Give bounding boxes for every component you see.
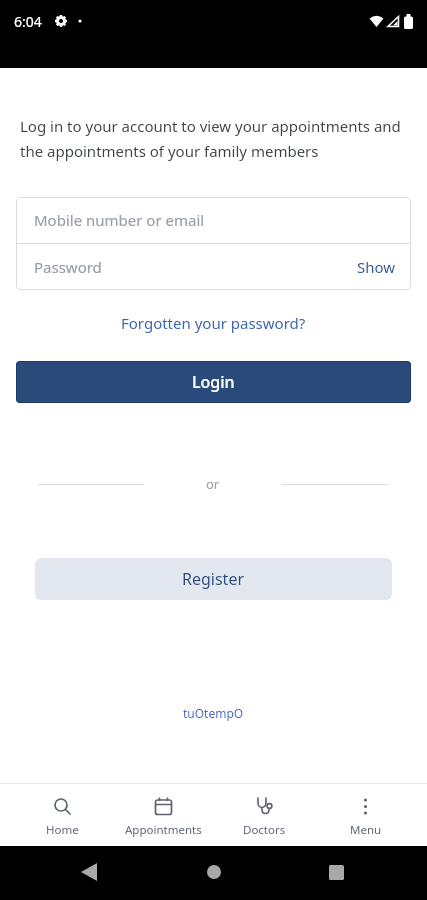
staticText: 6:04 xyxy=(14,12,42,31)
staticText: or xyxy=(206,475,220,493)
staticText: Mobile number or email xyxy=(34,210,205,230)
button[interactable]: Appointments xyxy=(113,784,214,846)
button[interactable]: Register xyxy=(35,558,392,600)
button[interactable] xyxy=(143,846,285,900)
button[interactable]: Mobile number or email xyxy=(16,197,411,243)
button[interactable]: Show xyxy=(357,257,396,277)
staticText: Login xyxy=(192,371,235,393)
button[interactable]: Menu xyxy=(315,784,416,846)
button[interactable]: tuOtempO xyxy=(183,705,244,721)
staticText: Password xyxy=(34,257,102,277)
button[interactable] xyxy=(285,846,427,900)
button[interactable]: Doctors xyxy=(214,784,315,846)
staticText: Register xyxy=(182,568,245,590)
button[interactable]: Home xyxy=(11,784,113,846)
button[interactable]: Password xyxy=(16,244,411,290)
button[interactable]: Forgotten your password? xyxy=(121,313,306,333)
button[interactable]: Login xyxy=(16,361,411,403)
staticText: Doctors xyxy=(243,822,286,838)
button[interactable] xyxy=(0,846,143,900)
staticText: Home xyxy=(46,822,79,838)
staticText: Log in to your account to view your appo… xyxy=(20,116,401,161)
staticText: Appointments xyxy=(125,822,202,838)
staticText: Menu xyxy=(350,822,382,838)
